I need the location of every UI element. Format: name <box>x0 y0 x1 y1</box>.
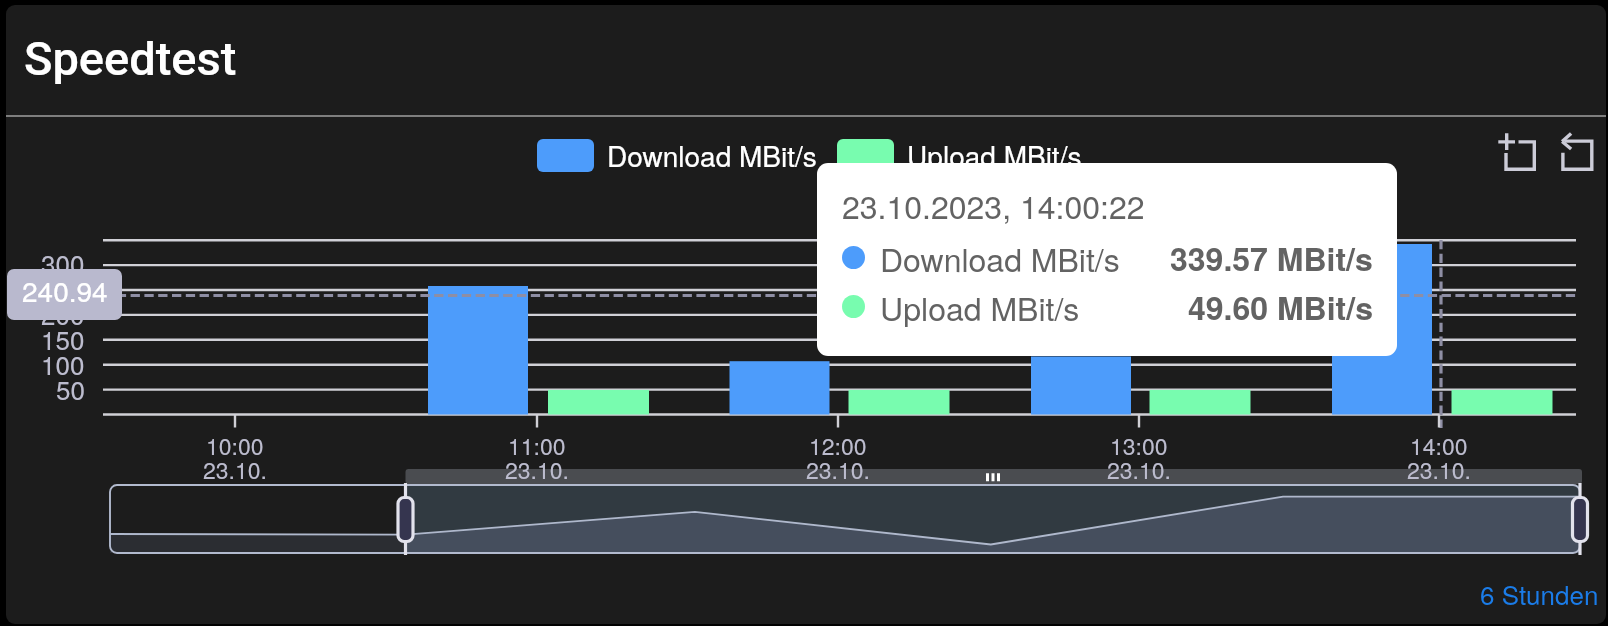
button[interactable]: Download MBit/s <box>817 235 1397 281</box>
staticText: 23.10. <box>203 453 267 486</box>
button[interactable]: 6 Stunden <box>1480 575 1599 612</box>
staticText: Upload MBit/s <box>907 135 1082 175</box>
button[interactable]: Upload MBit/s <box>837 135 1082 175</box>
staticText: 200 <box>41 295 85 332</box>
staticText: 49.60 MBit/s <box>1188 284 1373 330</box>
staticText: 50 <box>56 370 85 407</box>
staticText: 23.10. <box>806 453 870 486</box>
staticText: 12:00 <box>809 429 867 462</box>
button[interactable]: Zoom in <box>1495 130 1539 174</box>
staticText: Download MBit/s <box>880 235 1120 281</box>
staticText: 339.57 MBit/s <box>1170 235 1373 281</box>
staticText: 150 <box>41 320 85 357</box>
staticText: 23.10. <box>505 453 569 486</box>
button[interactable]: Reset zoom <box>1552 130 1596 174</box>
staticText: 10:00 <box>206 429 264 462</box>
staticText: 14:00 <box>1410 429 1468 462</box>
staticText: Download MBit/s <box>607 135 817 175</box>
button[interactable]: Speedtest <box>24 31 237 86</box>
staticText: 23.10. <box>1107 453 1171 486</box>
staticText: 13:00 <box>1110 429 1168 462</box>
staticText: 100 <box>41 345 85 382</box>
staticText: 240.94 <box>22 270 108 310</box>
button[interactable]: Download MBit/s <box>537 135 817 175</box>
staticText: 23.10.2023, 14:00:22 <box>842 182 1145 228</box>
staticText: 11:00 <box>508 429 566 462</box>
staticText: 23.10. <box>1407 453 1471 486</box>
button[interactable]: Upload MBit/s <box>817 284 1397 330</box>
staticText: 300 <box>41 244 85 281</box>
staticText: Upload MBit/s <box>880 284 1080 330</box>
